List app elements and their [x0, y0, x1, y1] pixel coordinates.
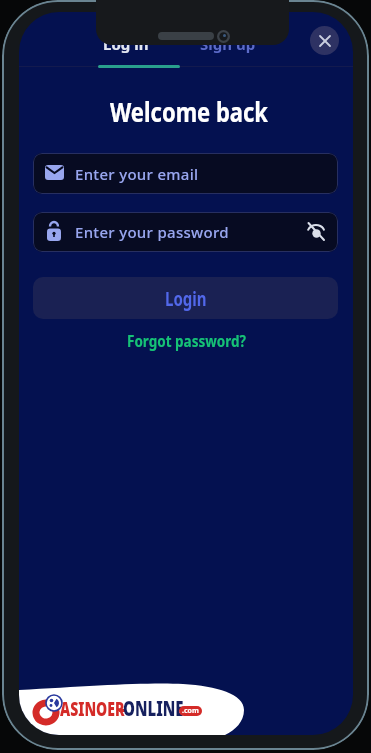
staticText: Welcome back	[110, 93, 269, 129]
staticText: Sign up	[200, 34, 256, 54]
button[interactable]: Enter your email	[33, 153, 338, 194]
staticText: Login	[165, 285, 207, 310]
staticText: Log in	[103, 34, 149, 54]
staticText: Enter your password	[75, 222, 229, 242]
staticText: ONLINE	[123, 694, 184, 721]
staticText: .com	[182, 706, 199, 716]
button[interactable]: Login	[33, 277, 338, 319]
staticText: Enter your email	[75, 164, 199, 184]
button[interactable]: Forgot password?	[127, 332, 246, 350]
staticText: ASINOER	[60, 696, 125, 721]
button[interactable]	[306, 221, 326, 242]
staticText: Forgot password?	[127, 331, 246, 351]
button[interactable]	[310, 26, 339, 55]
button[interactable]: Sign up	[188, 34, 268, 54]
button[interactable]: Enter your password	[33, 212, 338, 252]
button[interactable]: Log in	[86, 34, 166, 54]
